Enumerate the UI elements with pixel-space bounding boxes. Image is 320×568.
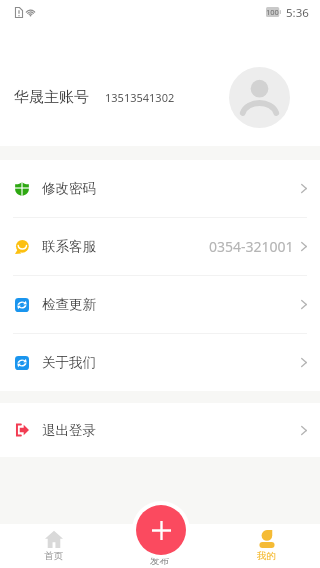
button[interactable]: Profile photo [229, 67, 290, 128]
button[interactable]: 发布 [136, 505, 186, 555]
button[interactable]: 我的 [213, 500, 320, 568]
staticText: 检查更新 [42, 296, 96, 313]
staticText: 13513541302 [105, 90, 175, 105]
staticText: 发布 [150, 555, 169, 567]
staticText: 5:36 [286, 5, 309, 21]
staticText: 我的 [257, 550, 276, 562]
button[interactable]: 关于我们 [0, 334, 320, 391]
button[interactable]: 修改密码 [0, 160, 320, 217]
staticText: 联系客服 [42, 238, 96, 255]
staticText: 修改密码 [42, 180, 96, 197]
button[interactable]: 首页 [0, 500, 106, 568]
staticText: 0354-321001 [209, 237, 294, 256]
button[interactable]: 退出登录 [0, 403, 320, 457]
staticText: 关于我们 [42, 354, 96, 371]
button[interactable]: 检查更新 [0, 276, 320, 333]
staticText: 首页 [44, 550, 63, 562]
button[interactable]: 联系客服 [0, 218, 320, 275]
staticText: 退出登录 [42, 422, 96, 439]
staticText: 华晟主账号 [14, 88, 89, 107]
staticText: 100 [266, 7, 279, 17]
